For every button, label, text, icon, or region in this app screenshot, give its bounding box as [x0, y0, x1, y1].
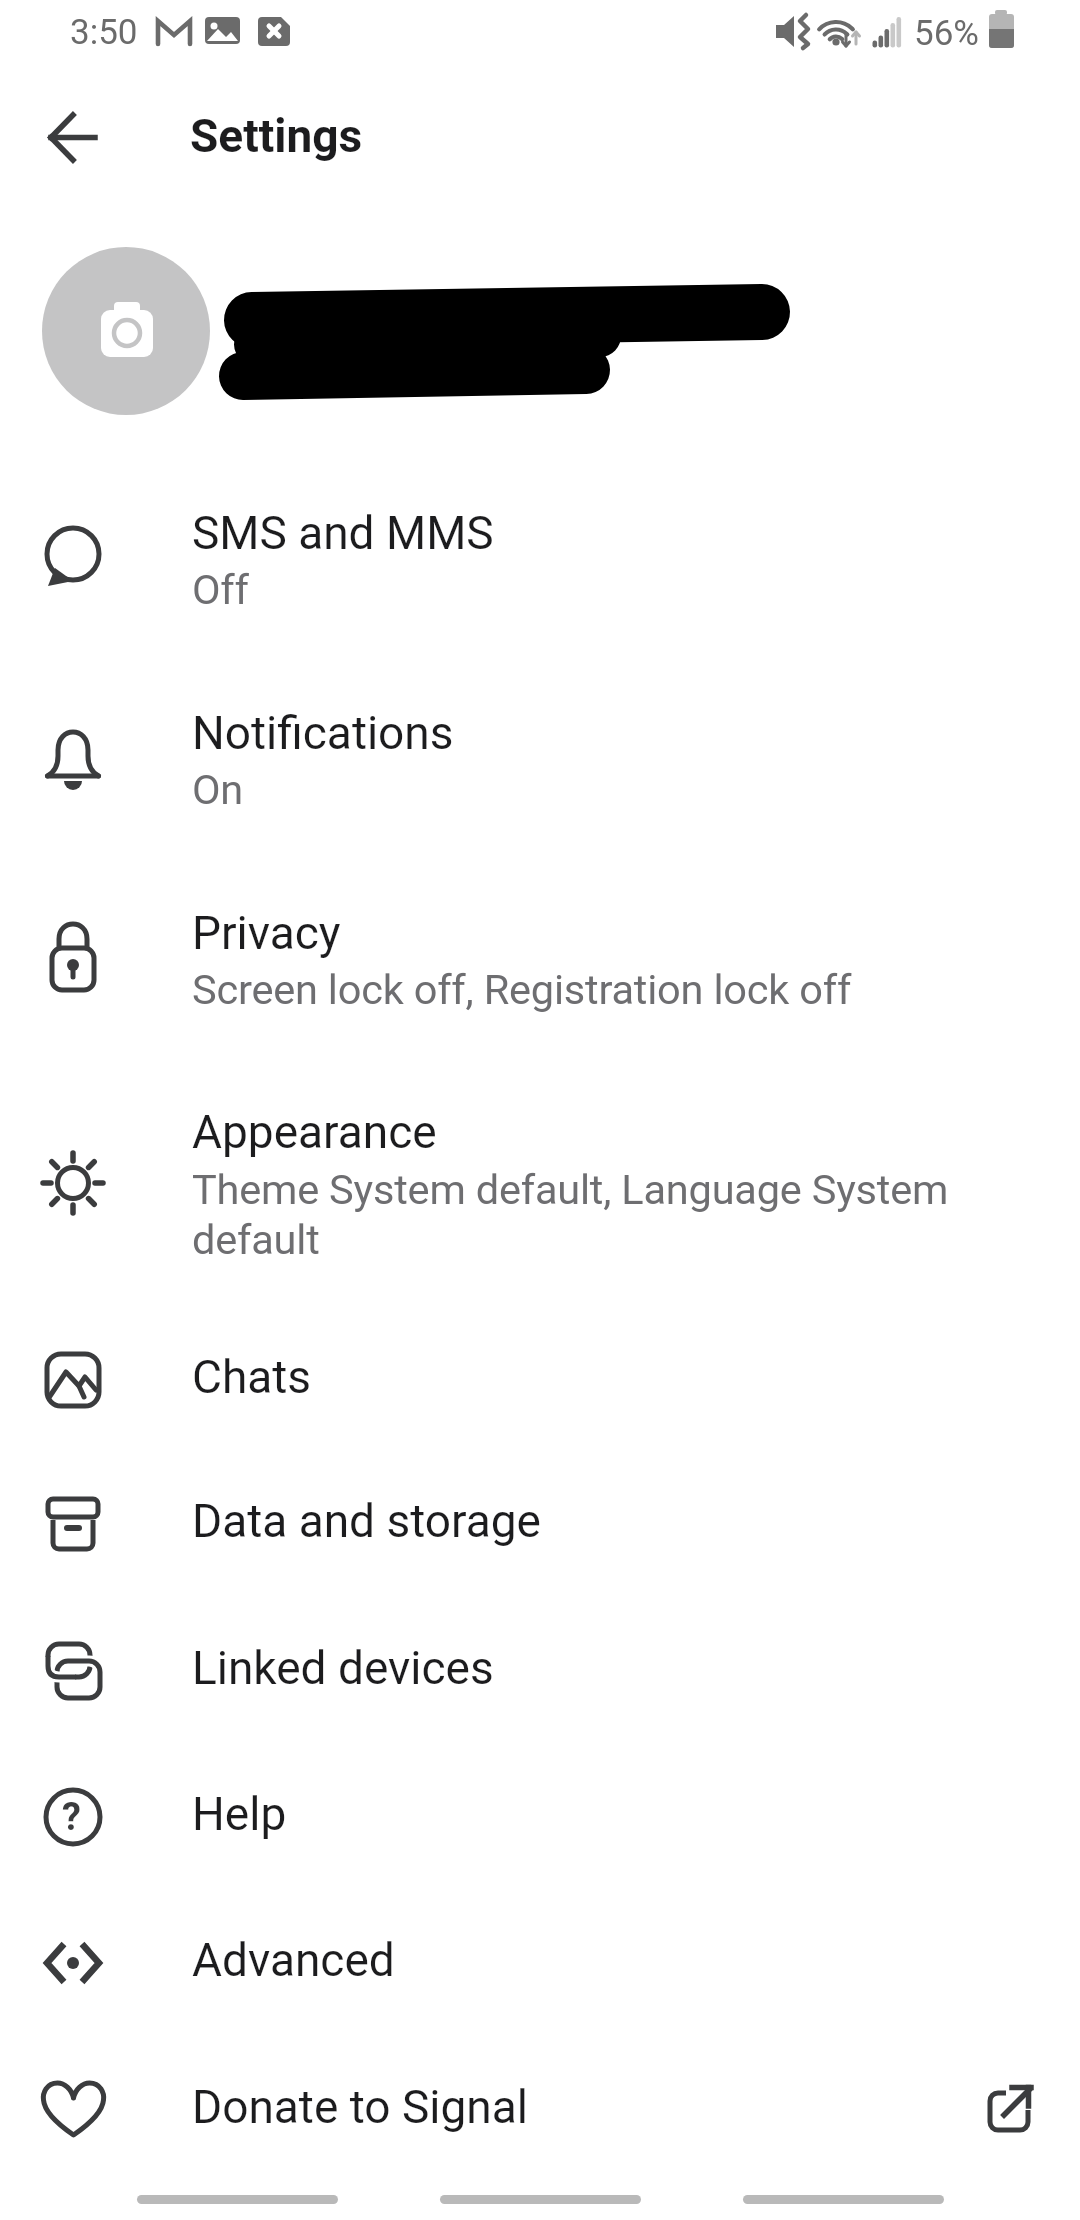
staticText: Settings [190, 109, 363, 163]
button[interactable]: Chats [0, 1307, 1080, 1453]
button[interactable]: Linked devices [0, 1599, 1080, 1745]
staticText: Privacy [192, 906, 341, 960]
button[interactable] [0, 230, 1080, 430]
staticText: SMS and MMS [192, 506, 494, 560]
button[interactable] [37, 101, 110, 174]
staticText: Theme System default, Language System [192, 1165, 949, 1214]
staticText: ? [62, 1795, 81, 1840]
staticText: Data and storage [192, 1494, 541, 1548]
staticText: Donate to Signal [192, 2080, 528, 2134]
staticText: 3:50 [70, 12, 138, 53]
button[interactable]: SMS and MMS [0, 480, 1080, 680]
staticText: On [192, 765, 244, 814]
button[interactable]: Privacy [0, 880, 1080, 1080]
staticText: Help [192, 1787, 287, 1841]
button[interactable]: Donate to Signal [0, 2037, 1080, 2183]
staticText: Off [192, 565, 249, 614]
button[interactable]: Notifications [0, 680, 1080, 880]
staticText: Linked devices [192, 1641, 494, 1695]
staticText: default [192, 1215, 320, 1264]
button[interactable]: Advanced [0, 1891, 1080, 2037]
staticText: Notifications [192, 706, 454, 760]
button[interactable]: Data and storage [0, 1453, 1080, 1599]
staticText: Chats [192, 1350, 312, 1404]
button[interactable]: Appearance [0, 1080, 1080, 1307]
staticText: Advanced [192, 1933, 395, 1987]
staticText: Screen lock off, Registration lock off [192, 965, 852, 1014]
button[interactable]: Help [0, 1745, 1080, 1891]
staticText: Appearance [192, 1105, 437, 1159]
staticText: 56% [914, 13, 979, 54]
